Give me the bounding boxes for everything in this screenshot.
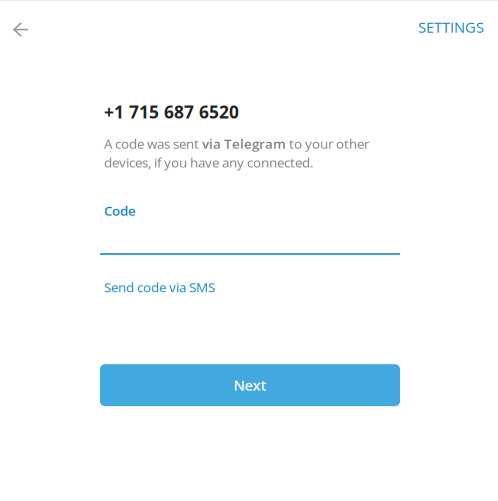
- button[interactable]: Code: [100, 201, 400, 255]
- button[interactable]: Send code via SMS: [100, 278, 215, 296]
- staticText: A code was sent via Telegram to your oth…: [104, 135, 369, 152]
- staticText: devices, if you have any connected.: [104, 153, 314, 171]
- staticText: Send code via SMS: [104, 278, 215, 296]
- staticText: +1 715 687 6520: [104, 100, 239, 124]
- button[interactable]: Back: [0, 2, 42, 51]
- staticText: Code: [104, 201, 136, 220]
- staticText: SETTINGS: [418, 17, 484, 37]
- button[interactable]: Next: [100, 364, 400, 406]
- button[interactable]: SETTINGS: [404, 0, 498, 53]
- staticText: Next: [233, 375, 266, 395]
